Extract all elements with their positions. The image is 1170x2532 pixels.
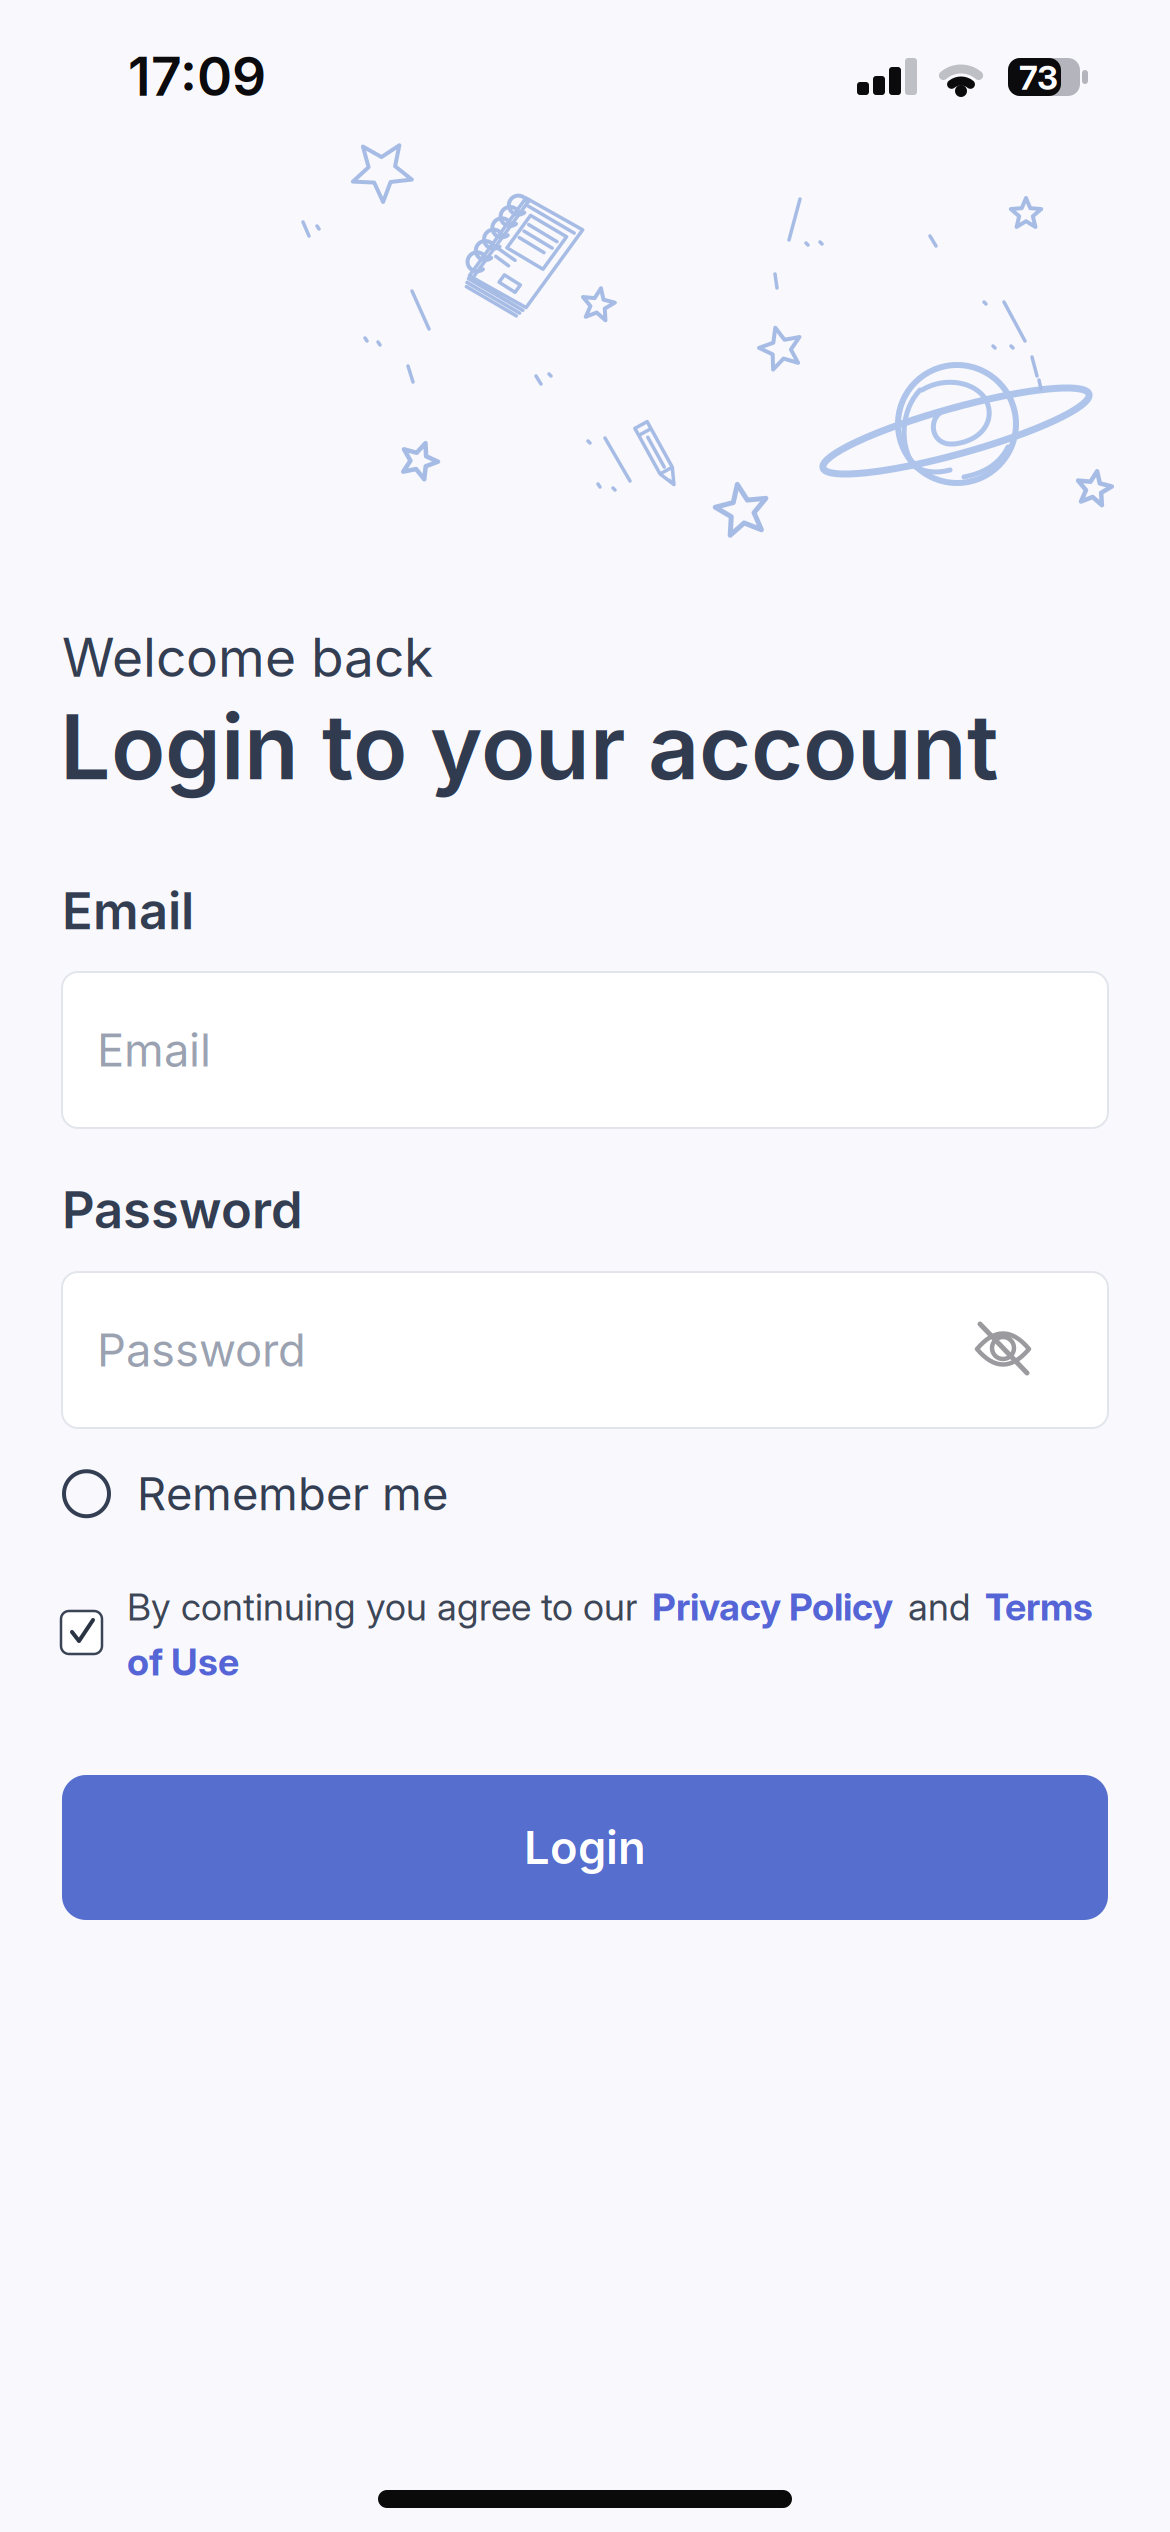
button[interactable]: Email [62,972,1108,1128]
staticText: of Use [127,1640,239,1684]
staticText: Password [62,1180,303,1240]
staticText: Password [97,1323,306,1377]
staticText: Email [97,1023,211,1077]
staticText: Remember me [137,1467,448,1520]
button[interactable]: Agree to terms [61,1611,102,1654]
staticText: 17:09 [128,45,266,108]
staticText: By continuing you agree to our [127,1585,637,1629]
staticText: and [908,1585,970,1629]
button[interactable]: Login [62,1775,1108,1920]
button[interactable]: Terms [985,1585,1093,1629]
button[interactable]: of Use [127,1640,239,1684]
staticText: Email [62,881,194,941]
staticText: Privacy Policy [652,1585,893,1629]
staticText: Login to your account [60,694,999,799]
button[interactable]: Remember me [64,1467,448,1520]
button[interactable]: Password [62,1272,1108,1428]
staticText: 73 [1019,58,1058,97]
staticText: Terms [985,1585,1093,1629]
button[interactable]: Privacy Policy [652,1585,893,1629]
staticText: Welcome back [62,626,433,689]
button[interactable]: Show password [967,1312,1039,1384]
staticText: Login [524,1821,646,1874]
